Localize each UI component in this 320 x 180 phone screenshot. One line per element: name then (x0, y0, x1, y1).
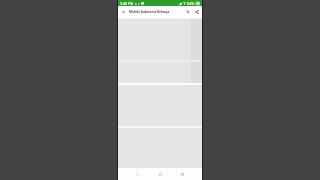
staticText: 3:48 PM (120, 1, 134, 6)
staticText: 84% (187, 1, 195, 6)
button[interactable]: Back (118, 6, 129, 18)
button[interactable]: Back (133, 168, 142, 180)
button[interactable]: Search (184, 6, 192, 18)
staticText: Mobile Indonesia Belanja (129, 10, 184, 14)
button[interactable]: Share (192, 6, 202, 18)
button[interactable]: Home (156, 168, 165, 180)
button[interactable]: Recents (178, 168, 187, 180)
